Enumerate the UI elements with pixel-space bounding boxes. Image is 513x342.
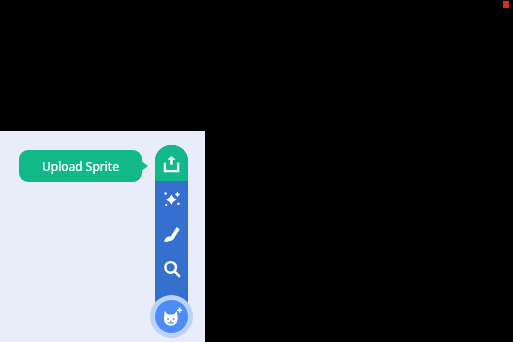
- button[interactable]: Paint brush: [155, 216, 188, 251]
- button[interactable]: Magic effects: [155, 181, 188, 216]
- button[interactable]: Search: [155, 251, 188, 286]
- button[interactable]: Upload Sprite: [19, 150, 142, 182]
- button[interactable]: Upload Sprite: [155, 145, 188, 181]
- staticText: Upload Sprite: [42, 158, 119, 174]
- button[interactable]: Add sprite: [150, 295, 193, 338]
